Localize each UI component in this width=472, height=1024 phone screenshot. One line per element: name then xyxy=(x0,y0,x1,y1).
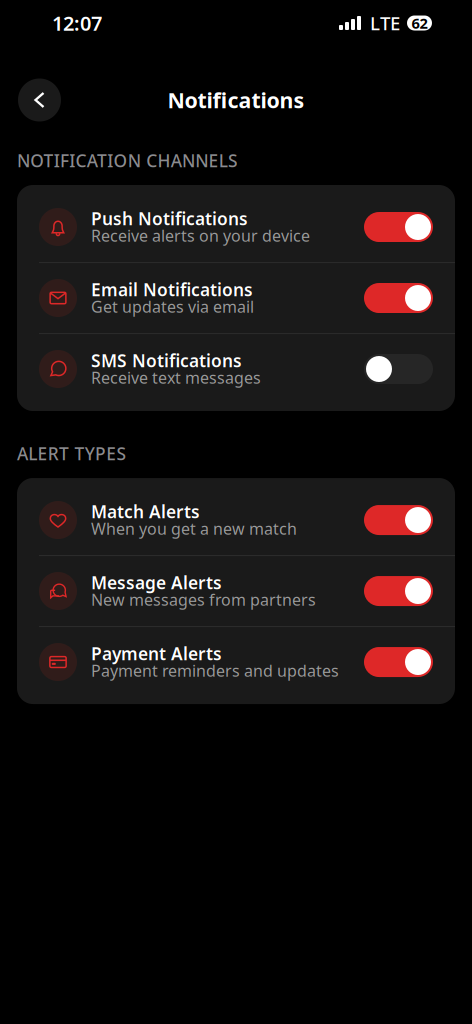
staticText: Payment Alerts xyxy=(91,642,222,665)
staticText: Get updates via email xyxy=(91,296,254,317)
button[interactable]: Back xyxy=(18,78,61,121)
button[interactable]: Email Notifications xyxy=(17,263,455,333)
staticText: Payment reminders and updates xyxy=(91,660,339,681)
staticText: LTE xyxy=(370,11,400,35)
staticText: ALERT TYPES xyxy=(17,442,126,465)
button[interactable]: SMS Notifications xyxy=(17,334,455,404)
staticText: NOTIFICATION CHANNELS xyxy=(17,149,238,172)
staticText: Receive text messages xyxy=(91,367,261,388)
button[interactable]: Match Alerts xyxy=(17,485,455,555)
button[interactable]: Payment Alerts xyxy=(17,627,455,697)
staticText: Receive alerts on your device xyxy=(91,225,310,246)
staticText: Push Notifications xyxy=(91,207,248,230)
staticText: Message Alerts xyxy=(91,571,222,594)
staticText: 62 xyxy=(411,13,427,33)
staticText: Match Alerts xyxy=(91,500,200,523)
staticText: When you get a new match xyxy=(91,518,297,539)
staticText: New messages from partners xyxy=(91,589,316,610)
staticText: 12:07 xyxy=(52,10,102,36)
button[interactable]: Message Alerts xyxy=(17,556,455,626)
staticText: Notifications xyxy=(167,86,304,114)
staticText: SMS Notifications xyxy=(91,349,242,372)
button[interactable]: Push Notifications xyxy=(17,192,455,262)
staticText: Email Notifications xyxy=(91,278,253,301)
